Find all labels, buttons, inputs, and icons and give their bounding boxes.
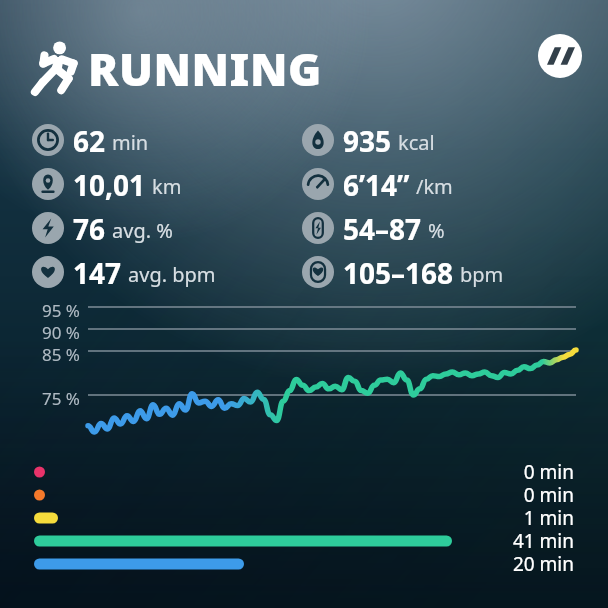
staticText: 85 %: [0, 343, 80, 366]
staticText: kcal: [398, 129, 435, 156]
staticText: 935: [343, 122, 392, 158]
staticText: /km: [416, 173, 453, 200]
button[interactable]: RUNNING: [26, 36, 316, 98]
button[interactable]: 105–168: [302, 254, 504, 290]
staticText: 147: [73, 254, 122, 290]
staticText: 20 min: [400, 551, 574, 577]
button[interactable]: 95 %: [0, 292, 608, 452]
button[interactable]: 0 min: [0, 460, 608, 585]
staticText: 95 %: [0, 299, 80, 322]
staticText: 75 %: [0, 387, 80, 410]
button[interactable]: 62: [32, 122, 149, 158]
staticText: km: [152, 173, 182, 200]
staticText: 10,01: [73, 166, 146, 202]
staticText: avg. bpm: [128, 261, 216, 288]
staticText: 76: [73, 210, 106, 246]
button[interactable]: 935: [302, 122, 435, 158]
staticText: min: [112, 129, 149, 156]
button[interactable]: 54–87: [302, 210, 445, 246]
staticText: 1 min: [400, 505, 574, 531]
staticText: 105–168: [343, 254, 454, 290]
staticText: 54–87: [343, 210, 422, 246]
button[interactable]: App logo: [538, 34, 582, 78]
staticText: %: [428, 217, 445, 244]
staticText: 0 min: [400, 482, 574, 508]
staticText: RUNNING: [88, 38, 322, 99]
button[interactable]: 10,01: [32, 166, 182, 202]
staticText: 62: [73, 122, 106, 158]
button[interactable]: 6’14”: [302, 166, 453, 202]
button[interactable]: 76: [32, 210, 173, 246]
staticText: 41 min: [400, 528, 574, 554]
button[interactable]: 147: [32, 254, 216, 290]
staticText: 6’14”: [343, 166, 410, 202]
staticText: 0 min: [400, 459, 574, 485]
staticText: avg. %: [112, 217, 173, 244]
staticText: 90 %: [0, 321, 80, 344]
staticText: bpm: [460, 261, 504, 288]
